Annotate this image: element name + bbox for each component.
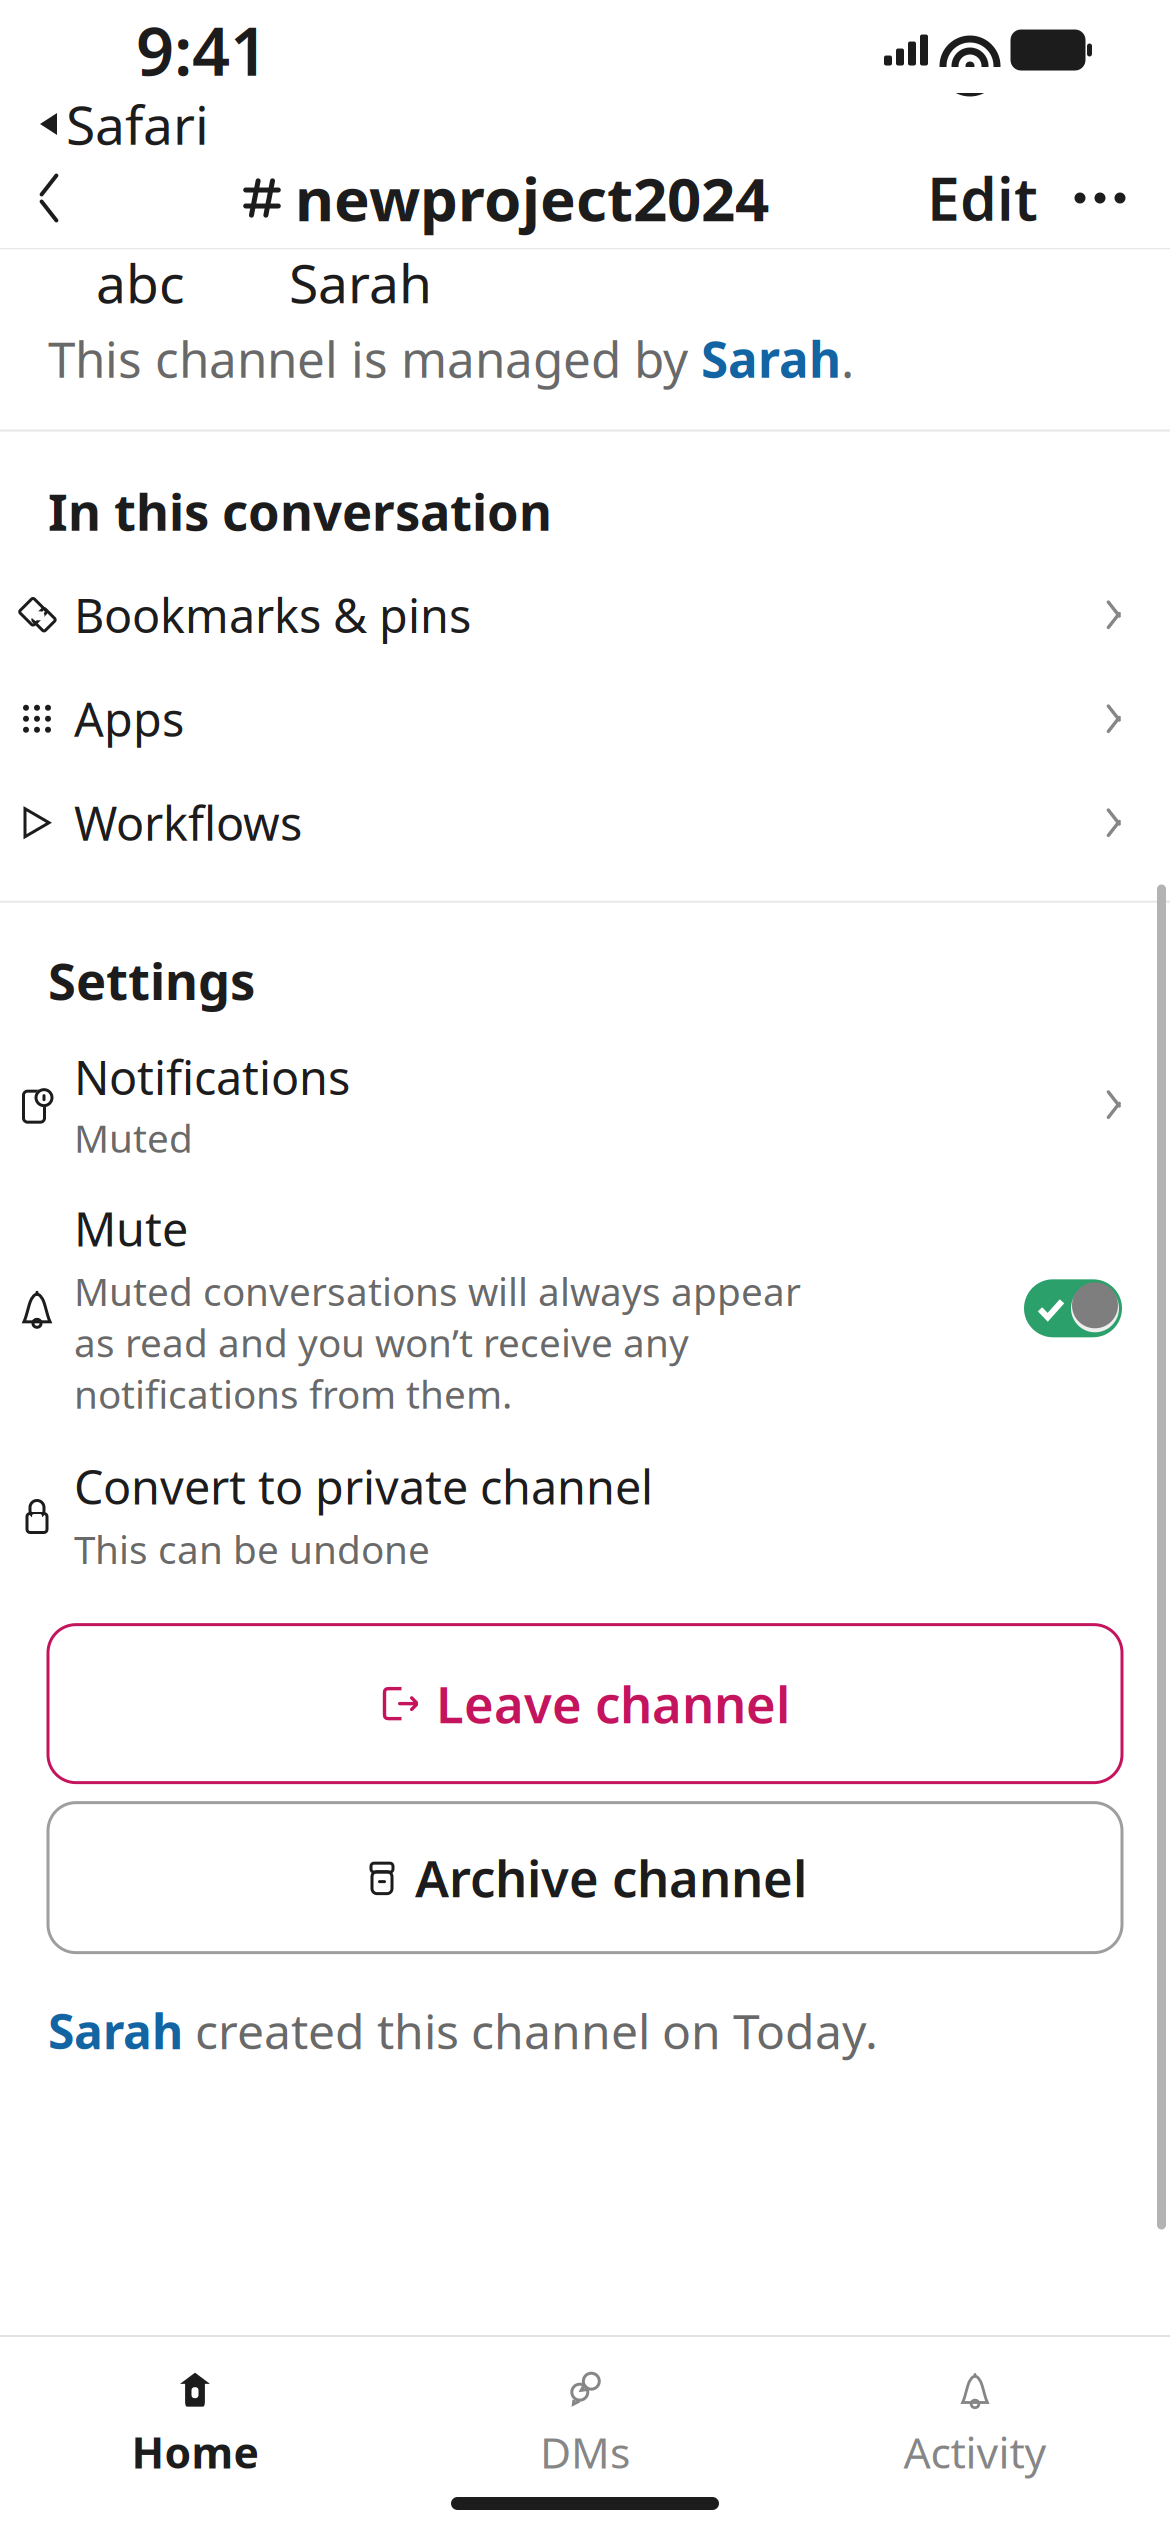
staticText: Home (131, 2424, 258, 2480)
staticText: Leave channel (436, 1670, 790, 1737)
button[interactable]: Back (0, 149, 98, 247)
button[interactable]: Edit (913, 149, 1052, 247)
button[interactable]: Workflows (0, 771, 1170, 875)
button[interactable]: Archive channel (48, 1803, 1122, 1953)
staticText: newproject2024 (295, 158, 769, 238)
staticText: Archive channel (415, 1844, 807, 1911)
staticText: Sarah (289, 247, 432, 318)
button[interactable]: Sarah (701, 326, 841, 391)
staticText: Sarah (701, 326, 841, 391)
button[interactable]: Activity (780, 2347, 1170, 2497)
staticText: Bookmarks & pins (74, 584, 471, 646)
staticText: This channel is managed by (48, 326, 701, 391)
staticText: Workflows (74, 792, 302, 854)
button[interactable]: DMs (390, 2347, 780, 2497)
staticText: Edit (927, 159, 1038, 237)
button[interactable]: Apps (0, 667, 1170, 771)
button[interactable]: Convert to private channel (0, 1437, 1170, 1593)
staticText: DMs (540, 2424, 630, 2480)
staticText: 9:41 (136, 6, 268, 94)
staticText: Settings (48, 947, 255, 1014)
button[interactable]: Home (0, 2347, 390, 2497)
staticText: In this conversation (48, 477, 552, 545)
staticText: Notifications (74, 1046, 350, 1108)
button[interactable]: Leave channel (48, 1625, 1122, 1783)
staticText: Sarah (48, 1999, 183, 2062)
button[interactable]: Notifications (0, 1030, 1170, 1179)
staticText: abc (96, 247, 185, 318)
staticText: This can be undone (74, 1523, 430, 1575)
staticText: Muted (74, 1112, 193, 1163)
button[interactable]: Sarah (48, 1999, 183, 2062)
button[interactable]: Bookmarks & pins (0, 563, 1170, 667)
staticText: . (841, 326, 854, 391)
button[interactable]: Mute (0, 1179, 1170, 1437)
staticText: Safari (66, 89, 209, 159)
button[interactable]: More options (1052, 149, 1148, 247)
staticText: Muted conversations will always appear a… (74, 1265, 801, 1419)
staticText: Activity (903, 2424, 1046, 2480)
button[interactable]: Back to Safari (0, 89, 209, 159)
staticText: Apps (74, 688, 184, 750)
staticText: created this channel on Today. (183, 1999, 878, 2062)
staticText: Mute (74, 1197, 188, 1259)
staticText: Convert to private channel (74, 1455, 653, 1517)
